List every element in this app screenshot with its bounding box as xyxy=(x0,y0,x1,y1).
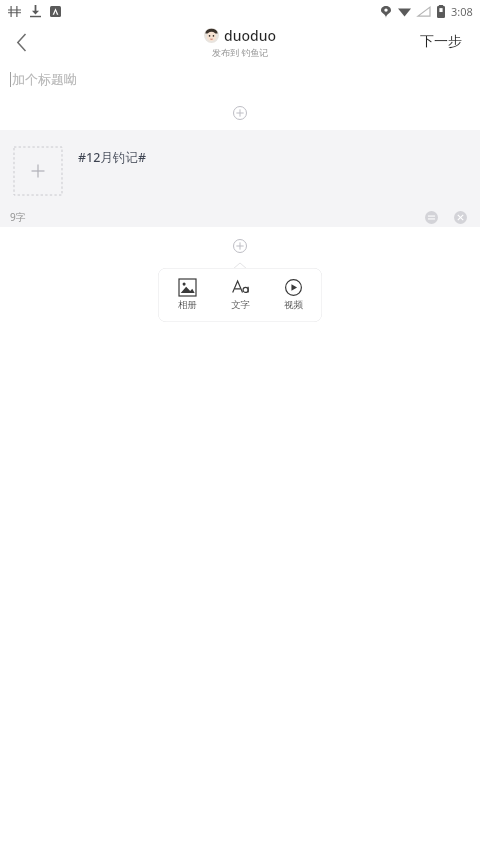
staticText: 文字 xyxy=(231,299,250,311)
staticText: 相册 xyxy=(178,299,197,311)
staticText: #12月钓记# xyxy=(78,149,146,166)
button[interactable]: 文字 xyxy=(216,277,264,313)
staticText: 加个标题呦 xyxy=(12,71,77,87)
staticText: 下一步 xyxy=(420,33,462,51)
button[interactable]: Add image xyxy=(0,130,480,227)
button[interactable]: Add block xyxy=(225,235,255,257)
staticText: 3:08 xyxy=(451,4,473,19)
button[interactable]: 相册 xyxy=(163,277,211,313)
button[interactable]: 视频 xyxy=(269,277,317,313)
staticText: duoduo xyxy=(224,26,277,45)
staticText: 视频 xyxy=(284,299,303,311)
button[interactable]: 加个标题呦 xyxy=(0,62,480,96)
button[interactable]: duoduo xyxy=(204,26,277,58)
button[interactable]: 下一步 xyxy=(416,29,466,55)
staticText: 发布到 钓鱼记 xyxy=(212,46,269,58)
staticText: 9字 xyxy=(10,210,26,224)
button[interactable]: Add block xyxy=(225,102,255,124)
button[interactable]: Add image xyxy=(14,147,62,195)
button[interactable]: Collapse xyxy=(421,207,441,227)
button[interactable]: Back xyxy=(0,22,44,62)
button[interactable]: Delete block xyxy=(450,207,470,227)
